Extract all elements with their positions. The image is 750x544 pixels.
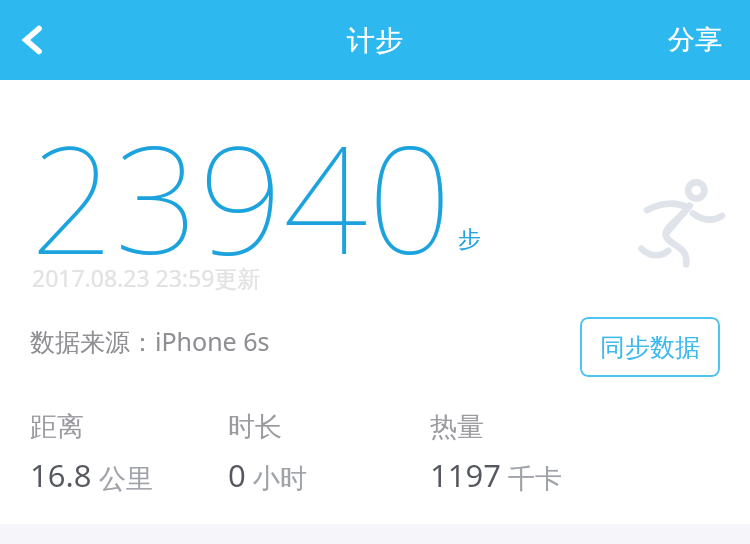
staticText: 1197 [430,454,501,496]
staticText: 小时 [246,459,308,496]
button[interactable]: 距离 [30,410,154,496]
staticText: 同步数据 [600,332,700,363]
button[interactable]: 热量 [430,410,563,496]
button[interactable]: 时长 [228,410,308,496]
other: Running [636,178,728,270]
staticText: 公里 [92,459,154,496]
staticText: 数据来源：iPhone 6s [30,324,270,358]
staticText: 千卡 [501,459,563,496]
staticText: 分享 [668,23,722,57]
button[interactable]: 分享 [640,5,750,75]
staticText: 时长 [228,410,282,444]
button[interactable]: Back [0,7,66,73]
staticText: 计步 [347,23,403,58]
staticText: 距离 [30,410,84,444]
staticText: 步 [458,225,481,254]
staticText: 23940 [30,96,452,276]
staticText: 热量 [430,410,484,444]
button[interactable]: 同步数据 [580,317,720,377]
staticText: 0 [228,454,246,496]
staticText: 2017.08.23 23:59更新 [32,262,261,293]
staticText: 16.8 [30,454,92,496]
